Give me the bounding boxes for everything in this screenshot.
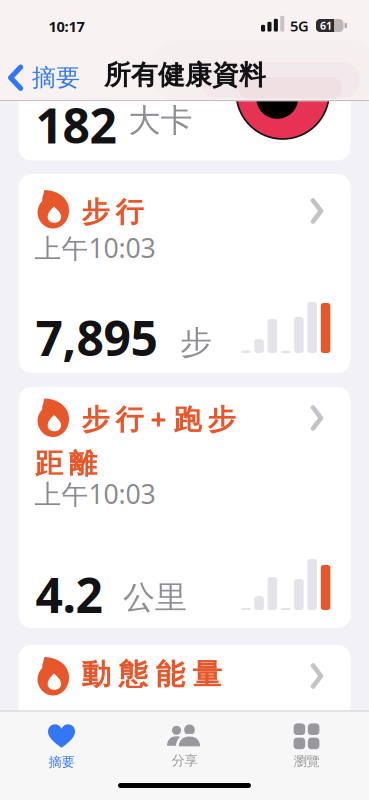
staticText: 大卡 [128, 101, 192, 140]
staticText: 分享 [171, 752, 197, 769]
staticText: 距 離 [35, 446, 97, 481]
button[interactable]: 步 行 + 跑 步 [18, 387, 350, 628]
button[interactable]: 分享 [129, 720, 239, 772]
staticText: 10:17 [48, 16, 84, 36]
staticText: 上午10:03 [34, 476, 155, 511]
staticText: 5G [290, 16, 309, 36]
button[interactable]: 動 態 能 量 [18, 645, 350, 745]
staticText: 182 [35, 93, 116, 157]
staticText: 上午10:03 [34, 230, 155, 265]
staticText: 7,895 [35, 306, 157, 369]
staticText: 步 行 + 跑 步 [81, 400, 235, 437]
button[interactable]: 摘要 [6, 720, 116, 772]
staticText: 公里 [123, 578, 187, 617]
staticText: 步 行 [81, 195, 143, 229]
staticText: 61 [320, 18, 332, 33]
staticText: 動 態 能 量 [81, 656, 221, 692]
staticText: 摘要 [48, 754, 74, 770]
button[interactable]: 瀏覽 [251, 720, 361, 772]
staticText: 摘要 [32, 63, 80, 92]
staticText: 4.2 [35, 562, 102, 626]
button[interactable]: 步 行 [18, 174, 350, 373]
staticText: 步 [180, 323, 212, 362]
staticText: 瀏覽 [293, 753, 319, 770]
button[interactable]: 182 [18, 58, 350, 160]
button[interactable]: 返回摘要 [8, 63, 80, 92]
staticText: 所有健康資料 [104, 59, 266, 91]
